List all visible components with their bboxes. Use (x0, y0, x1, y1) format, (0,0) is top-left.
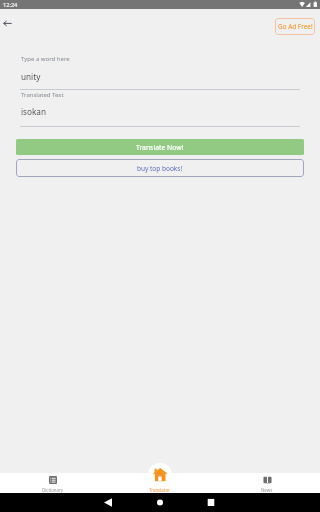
staticText: 12:24 (3, 1, 18, 9)
staticText: News (261, 487, 273, 493)
button[interactable]: buy top books! (16, 159, 304, 177)
staticText: Dictionary (42, 487, 64, 493)
staticText: Type a word here (21, 55, 70, 63)
button[interactable]: Translator (106, 473, 213, 493)
button[interactable]: News (213, 473, 320, 493)
staticText: Translator (149, 487, 170, 493)
button[interactable]: Dictionary (0, 473, 106, 493)
button[interactable]: Back (0, 15, 16, 31)
button[interactable]: Translate Now! (16, 139, 304, 155)
staticText: buy top books! (137, 164, 183, 173)
staticText: Translate Now! (136, 143, 184, 152)
button[interactable]: Go Ad Free! (275, 18, 315, 35)
staticText: Translated Text (21, 91, 64, 99)
staticText: unity (21, 71, 41, 82)
staticText: isokan (21, 106, 47, 117)
staticText: Go Ad Free! (278, 22, 313, 31)
